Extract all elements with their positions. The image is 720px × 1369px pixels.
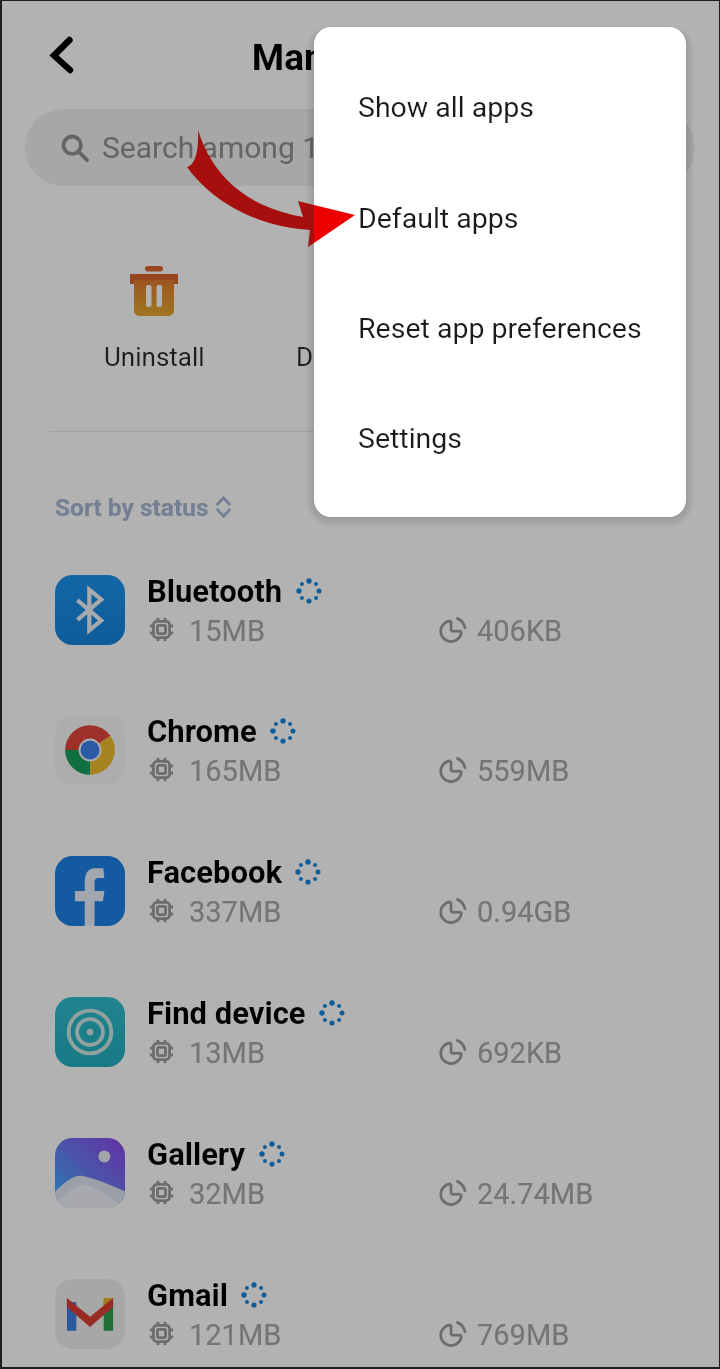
staticText: 121MB	[189, 1318, 282, 1352]
staticText: Manage apps	[5, 36, 720, 79]
button[interactable]: Search among 131 apps	[25, 109, 695, 186]
button[interactable]: Find device	[0, 962, 717, 1102]
staticText: Bluetooth	[147, 573, 283, 609]
staticText: 15MB	[189, 614, 265, 648]
staticText: 13MB	[189, 1036, 265, 1070]
staticText: 337MB	[189, 895, 282, 929]
button[interactable]: Default apps	[314, 163, 686, 273]
staticText: 24.74MB	[477, 1177, 594, 1211]
button[interactable]: Bluetooth	[0, 540, 717, 680]
staticText: 769MB	[477, 1318, 570, 1352]
button[interactable]: Back	[24, 24, 86, 86]
staticText: Gallery	[147, 1136, 246, 1172]
staticText: 32MB	[189, 1177, 265, 1211]
button[interactable]: Permissions	[466, 252, 666, 382]
staticText: Facebook	[147, 854, 282, 890]
button[interactable]: Uninstall	[54, 252, 254, 382]
button[interactable]: Deep clean	[260, 252, 460, 382]
staticText: Show all apps	[358, 91, 535, 124]
staticText: Search among 131 apps	[102, 130, 426, 165]
staticText: 406KB	[477, 614, 563, 648]
button[interactable]: Chrome	[0, 680, 717, 820]
staticText: Permissions	[494, 342, 638, 372]
button[interactable]: Gallery	[0, 1103, 717, 1243]
button[interactable]: Gmail	[0, 1244, 717, 1369]
button[interactable]: Reset app preferences	[314, 273, 686, 383]
staticText: Sort by status	[55, 493, 209, 522]
staticText: Settings	[358, 422, 463, 455]
staticText: 0.94GB	[477, 895, 572, 929]
button[interactable]: Settings	[314, 383, 686, 493]
staticText: Default apps	[358, 202, 519, 235]
button[interactable]: Facebook	[0, 821, 717, 961]
staticText: 559MB	[477, 754, 570, 788]
staticText: Find device	[147, 995, 306, 1031]
staticText: Gmail	[147, 1277, 228, 1313]
staticText: 692KB	[477, 1036, 563, 1070]
staticText: Uninstall	[104, 342, 205, 372]
staticText: 165MB	[189, 754, 282, 788]
button[interactable]: Sort by status	[47, 486, 239, 528]
button[interactable]: Show all apps	[314, 52, 686, 162]
staticText: Deep clean	[296, 342, 424, 372]
staticText: Chrome	[147, 713, 257, 749]
staticText: Reset app preferences	[358, 312, 642, 345]
